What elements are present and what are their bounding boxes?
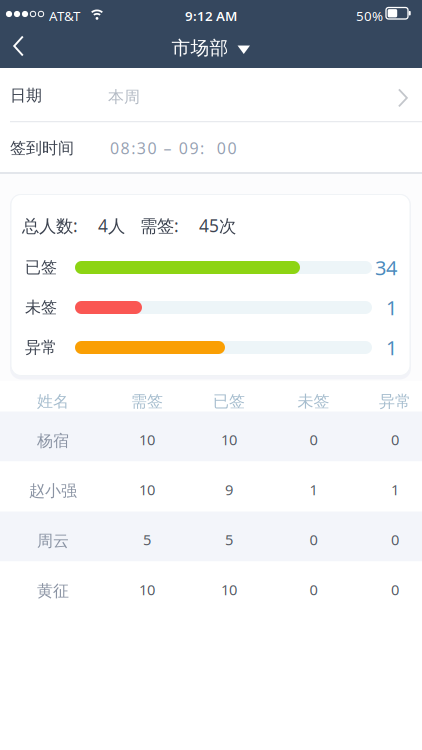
staticText: 0: [391, 580, 399, 599]
staticText: 08:30 – 09: 00: [110, 137, 236, 158]
button[interactable]: Back: [0, 28, 44, 68]
staticText: 0: [391, 430, 399, 449]
button[interactable]: 市场部: [0, 28, 422, 68]
staticText: 1: [386, 294, 397, 321]
staticText: 10: [139, 430, 155, 449]
staticText: 杨宿: [37, 431, 69, 451]
staticText: 已签: [213, 392, 245, 411]
button[interactable]: 日期 本周: [0, 68, 422, 121]
staticText: 10: [221, 430, 237, 449]
staticText: 需签: [131, 392, 163, 411]
staticText: 1: [391, 480, 399, 499]
staticText: 签到时间: [10, 138, 74, 158]
staticText: 10: [221, 580, 237, 599]
staticText: AT&T: [49, 7, 80, 25]
staticText: 1: [386, 334, 397, 361]
staticText: 赵小强: [29, 481, 77, 501]
staticText: 0: [391, 530, 399, 549]
staticText: 50%: [356, 7, 383, 25]
staticText: 0: [309, 430, 317, 449]
staticText: 未签: [25, 298, 57, 317]
staticText: 1: [309, 480, 317, 499]
staticText: 异常: [25, 338, 57, 357]
staticText: 9:12 AM: [185, 7, 237, 25]
staticText: 0: [309, 580, 317, 599]
staticText: 10: [139, 580, 155, 599]
staticText: 周云: [37, 531, 69, 551]
staticText: 黄征: [37, 581, 69, 601]
staticText: 姓名: [37, 392, 69, 411]
staticText: 市场部: [171, 36, 228, 59]
staticText: 异常: [379, 392, 411, 411]
staticText: 已签: [25, 258, 57, 277]
staticText: 本周: [108, 87, 140, 107]
staticText: 日期: [10, 85, 42, 105]
staticText: 总人数: 4人 需签: 45次: [22, 214, 236, 237]
staticText: 9: [225, 480, 233, 499]
staticText: 5: [225, 530, 233, 549]
staticText: 5: [143, 530, 151, 549]
staticText: 0: [309, 530, 317, 549]
staticText: 10: [139, 480, 155, 499]
staticText: 未签: [297, 392, 329, 411]
staticText: 34: [375, 254, 397, 281]
